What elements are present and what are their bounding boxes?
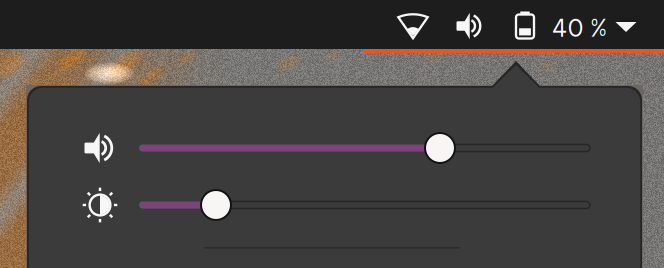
staticText: 40 % <box>551 9 606 45</box>
button[interactable]: System menu <box>363 0 664 49</box>
button[interactable]: Brightness <box>27 142 642 198</box>
button[interactable]: Volume <box>27 86 642 142</box>
